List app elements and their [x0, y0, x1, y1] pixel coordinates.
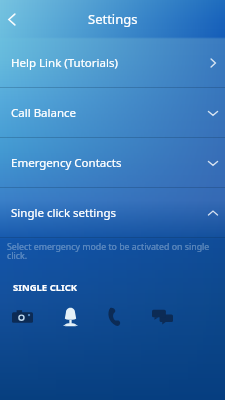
staticText: SINGLE CLICK [13, 281, 78, 294]
staticText: Select emergency mode to be activated on… [7, 241, 221, 262]
button[interactable]: Call [105, 305, 127, 327]
button[interactable]: Help Link (Tutorials) [0, 38, 225, 88]
staticText: Settings [88, 10, 138, 28]
staticText: Call Balance [11, 105, 77, 121]
button[interactable]: Microphone [59, 305, 81, 327]
button[interactable]: Single click settings [0, 188, 225, 238]
staticText: Single click settings [11, 205, 116, 221]
button[interactable]: Call Balance [0, 88, 225, 138]
button[interactable]: Emergency Contacts [0, 138, 225, 188]
button[interactable]: Message [151, 305, 173, 327]
staticText: Emergency Contacts [11, 155, 122, 171]
button[interactable]: Back [0, 7, 24, 31]
staticText: Help Link (Tutorials) [11, 55, 118, 71]
button[interactable]: Camera [11, 305, 33, 327]
